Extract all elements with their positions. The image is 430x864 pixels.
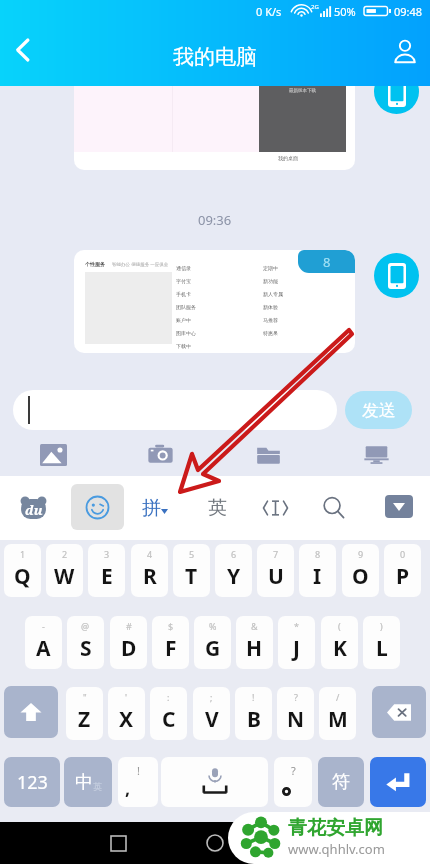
- staticText: ,: [125, 776, 131, 801]
- staticText: 2: [62, 548, 68, 560]
- staticText: %: [209, 620, 217, 632]
- button[interactable]: (: [321, 616, 358, 669]
- button[interactable]: Image: [0, 434, 107, 476]
- button[interactable]: [13, 390, 337, 430]
- button[interactable]: Backspace: [372, 686, 426, 738]
- button[interactable]: Baidu input: [12, 476, 54, 540]
- button[interactable]: *: [278, 616, 315, 669]
- staticText: 账户中: [176, 317, 191, 323]
- staticText: R: [143, 562, 157, 591]
- staticText: ?: [291, 763, 296, 778]
- button[interactable]: 发送: [345, 391, 412, 429]
- button[interactable]: 最新版本下载: [74, 86, 355, 170]
- button[interactable]: Recents: [98, 822, 138, 864]
- button[interactable]: 7: [257, 544, 294, 597]
- staticText: 09:48: [394, 4, 423, 19]
- staticText: 最新版本下载: [289, 88, 316, 94]
- staticText: 1: [20, 548, 26, 560]
- button[interactable]: 6: [215, 544, 252, 597]
- button[interactable]: :: [150, 687, 187, 740]
- button[interactable]: Period: [274, 757, 312, 807]
- button[interactable]: Enter: [370, 757, 426, 807]
- staticText: ": [83, 691, 87, 703]
- button[interactable]: Profile: [380, 30, 430, 72]
- staticText: !: [137, 763, 140, 778]
- staticText: Y: [227, 562, 241, 591]
- button[interactable]: Chinese English: [64, 757, 112, 807]
- staticText: 马推荐: [263, 317, 278, 323]
- button[interactable]: ?: [277, 687, 314, 740]
- staticText: B: [247, 705, 261, 734]
- staticText: L: [376, 634, 388, 663]
- staticText: N: [287, 705, 305, 734]
- staticText: T: [185, 562, 198, 591]
- button[interactable]: @: [67, 616, 104, 669]
- button[interactable]: Files: [214, 434, 322, 476]
- button[interactable]: 4: [131, 544, 168, 597]
- staticText: 新体验: [263, 304, 278, 310]
- button[interactable]: Shift: [4, 686, 58, 738]
- staticText: P: [396, 562, 410, 591]
- staticText: 2G: [311, 3, 319, 11]
- button[interactable]: Space: [161, 757, 268, 807]
- staticText: V: [205, 705, 219, 734]
- button[interactable]: ': [108, 687, 145, 740]
- staticText: 符: [332, 771, 350, 794]
- button[interactable]: Comma: [118, 757, 158, 807]
- button[interactable]: 英: [197, 476, 237, 540]
- staticText: 英: [208, 496, 227, 520]
- button[interactable]: /: [319, 687, 356, 740]
- staticText: -: [42, 620, 45, 632]
- staticText: 特惠果: [263, 330, 278, 336]
- button[interactable]: 0: [384, 544, 421, 597]
- staticText: 图库中心: [176, 330, 196, 336]
- button[interactable]: 8: [299, 544, 336, 597]
- button[interactable]: #: [110, 616, 147, 669]
- button[interactable]: &: [236, 616, 273, 669]
- button[interactable]: Device avatar: [374, 253, 419, 298]
- button[interactable]: Computer: [322, 434, 430, 476]
- staticText: S: [80, 634, 92, 663]
- button[interactable]: -: [25, 616, 62, 669]
- staticText: M: [328, 705, 348, 734]
- button[interactable]: Symbols: [318, 757, 364, 807]
- staticText: 5: [189, 548, 195, 560]
- button[interactable]: Emoji: [71, 484, 124, 530]
- staticText: 英: [93, 781, 102, 792]
- button[interactable]: 2: [46, 544, 83, 597]
- button[interactable]: Home: [195, 822, 235, 864]
- staticText: *: [294, 620, 299, 632]
- button[interactable]: ): [363, 616, 400, 669]
- staticText: 3: [104, 548, 110, 560]
- button[interactable]: 拼: [142, 476, 182, 540]
- button[interactable]: Search: [311, 476, 357, 540]
- staticText: 8: [323, 253, 331, 271]
- button[interactable]: Hide keyboard: [385, 495, 413, 518]
- button[interactable]: 3: [88, 544, 125, 597]
- button[interactable]: ;: [193, 687, 230, 740]
- staticText: 4: [147, 548, 153, 560]
- button[interactable]: 123: [4, 757, 60, 807]
- staticText: ;: [210, 691, 213, 703]
- button[interactable]: Back: [0, 30, 46, 70]
- button[interactable]: Device avatar: [374, 86, 419, 114]
- staticText: 7: [273, 548, 279, 560]
- staticText: F: [165, 634, 177, 663]
- button[interactable]: Move cursor: [252, 476, 298, 540]
- button[interactable]: 5: [173, 544, 210, 597]
- staticText: 通信录: [176, 265, 191, 271]
- button[interactable]: 9: [342, 544, 379, 597]
- staticText: !: [252, 691, 255, 703]
- button[interactable]: $: [152, 616, 189, 669]
- button[interactable]: %: [194, 616, 231, 669]
- button[interactable]: 个性服务: [74, 250, 355, 353]
- button[interactable]: !: [235, 687, 272, 740]
- button[interactable]: 1: [4, 544, 41, 597]
- button[interactable]: ": [66, 687, 103, 740]
- staticText: Q: [14, 562, 31, 591]
- staticText: ?: [294, 691, 298, 703]
- staticText: 新人专属: [263, 291, 283, 297]
- staticText: W: [54, 562, 75, 591]
- button[interactable]: Camera: [107, 434, 214, 476]
- staticText: 定期中: [263, 265, 278, 271]
